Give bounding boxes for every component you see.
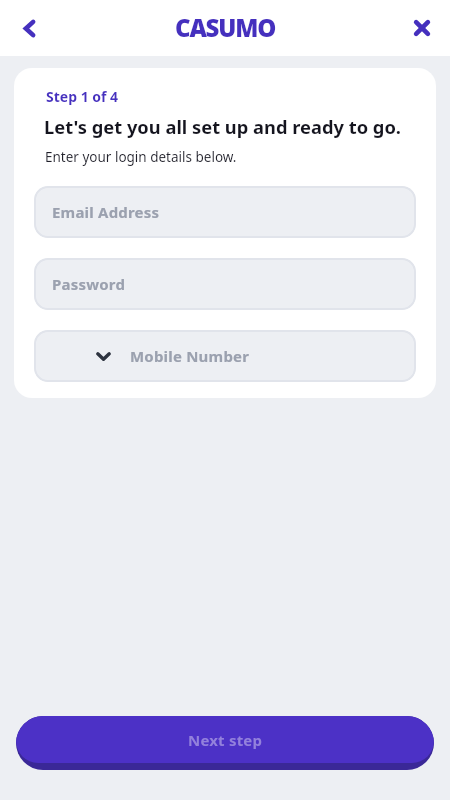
- staticText: Password: [52, 274, 126, 294]
- button[interactable]: Mobile Number: [34, 330, 416, 382]
- staticText: Enter your login details below.: [45, 148, 237, 166]
- button[interactable]: Password: [34, 258, 416, 310]
- button[interactable]: [409, 15, 435, 41]
- staticText: Step 1 of 4: [46, 87, 119, 106]
- staticText: Next step: [188, 730, 263, 750]
- staticText: Email Address: [52, 202, 160, 222]
- button[interactable]: [16, 15, 42, 41]
- staticText: Mobile Number: [130, 346, 250, 366]
- staticText: Let's get you all set up and ready to go…: [44, 114, 401, 139]
- button[interactable]: Next step: [16, 716, 434, 770]
- staticText: CASUMO: [175, 11, 276, 44]
- button[interactable]: Email Address: [34, 186, 416, 238]
